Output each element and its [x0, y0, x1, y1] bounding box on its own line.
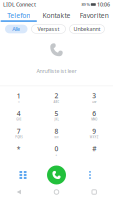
staticText: 4: [17, 109, 21, 118]
staticText: 10:06: [97, 1, 110, 8]
staticText: Anrufliste ist leer: [36, 67, 76, 74]
staticText: WXYZ: [90, 135, 99, 139]
staticText: TUV: [54, 135, 59, 139]
button[interactable]: Verpasst: [31, 25, 65, 33]
staticText: 8: [54, 127, 58, 136]
staticText: 9: [92, 127, 96, 136]
staticText: Alle: [12, 25, 20, 33]
staticText: Unbekannt: [73, 25, 100, 33]
staticText: ∞: [18, 100, 20, 103]
button[interactable]: 6: [75, 106, 113, 124]
button[interactable]: Home: [38, 184, 75, 200]
staticText: ABC: [53, 100, 59, 104]
button[interactable]: 7: [0, 124, 38, 142]
button[interactable]: More options: [75, 163, 105, 187]
staticText: Telefon: [7, 11, 30, 20]
staticText: 7: [17, 127, 21, 136]
button[interactable]: Alle: [5, 25, 27, 33]
staticText: 3: [92, 91, 96, 100]
staticText: 1: [17, 91, 21, 100]
button[interactable]: 5: [38, 106, 75, 124]
button[interactable]: 1: [0, 89, 38, 106]
button[interactable]: Call: [44, 163, 68, 187]
staticText: Kontakte: [42, 11, 70, 20]
staticText: #: [92, 144, 96, 153]
button[interactable]: 0: [38, 142, 75, 159]
staticText: GHI: [16, 118, 21, 121]
staticText: 2: [54, 91, 58, 100]
staticText: PQRS: [15, 135, 22, 139]
staticText: DEF: [92, 100, 96, 104]
staticText: 0: [54, 144, 58, 153]
button[interactable]: #: [75, 142, 113, 159]
staticText: Favoriten: [80, 11, 109, 20]
button[interactable]: Telefon: [0, 9, 38, 22]
button[interactable]: 3: [75, 89, 113, 106]
staticText: MNO: [91, 118, 97, 121]
staticText: 6: [92, 109, 96, 118]
button[interactable]: Unbekannt: [69, 25, 104, 33]
staticText: +: [55, 153, 57, 157]
button[interactable]: 9: [75, 124, 113, 142]
button[interactable]: Keypad: [8, 163, 38, 187]
button[interactable]: Favoriten: [75, 9, 113, 22]
button[interactable]: 2: [38, 89, 75, 106]
staticText: 5: [54, 109, 58, 118]
staticText: JKL: [54, 118, 58, 121]
staticText: *: [17, 144, 21, 153]
button[interactable]: Recents: [75, 184, 113, 200]
button[interactable]: 8: [38, 124, 75, 142]
staticText: Verpasst: [37, 25, 59, 33]
button[interactable]: 4: [0, 106, 38, 124]
staticText: LIDL Connect: [3, 1, 36, 8]
button[interactable]: Kontakte: [38, 9, 75, 22]
button[interactable]: *: [0, 142, 38, 159]
button[interactable]: Back: [0, 184, 38, 200]
staticText: 89 %: [82, 2, 90, 7]
